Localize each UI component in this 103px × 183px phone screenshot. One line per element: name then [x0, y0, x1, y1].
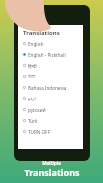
button[interactable]: हिन्दी	[18, 60, 83, 71]
button[interactable]: বাংলা	[18, 71, 83, 82]
staticText: हिन्दी	[28, 63, 37, 69]
button[interactable]: Bahasa Indonesia	[18, 82, 83, 93]
staticText: Multiple	[42, 160, 61, 166]
button[interactable]: TURN OFF	[18, 126, 83, 137]
staticText: Bahasa Indonesia	[28, 85, 67, 91]
button[interactable]: Türk	[18, 115, 83, 126]
button[interactable]: English - Pickthall	[18, 49, 83, 60]
staticText: TURN OFF	[28, 129, 50, 135]
button[interactable]: русский	[18, 104, 83, 115]
staticText: Türk	[28, 118, 38, 124]
staticText: اردو	[28, 96, 36, 101]
staticText: Translations	[23, 29, 60, 37]
staticText: русский	[28, 107, 46, 113]
staticText: English	[28, 41, 44, 47]
button[interactable]: اردو	[18, 93, 83, 104]
staticText: Translations	[24, 166, 80, 178]
staticText: বাংলা	[28, 74, 36, 79]
staticText: English - Pickthall	[28, 52, 66, 58]
button[interactable]: English	[18, 38, 83, 49]
